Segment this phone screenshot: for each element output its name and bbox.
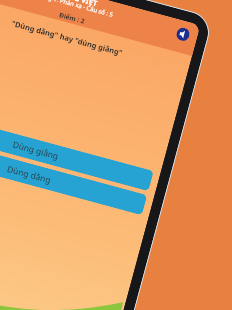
staticText: Vòng 1: Phản xạ - Câu số : 5 <box>37 0 114 19</box>
button[interactable]: Sound <box>175 26 191 42</box>
staticText: Dùng giằng <box>11 139 60 162</box>
staticText: "Dùng dằng" hay "dùng giằng" <box>10 18 124 58</box>
staticText: Dùng dằng <box>6 163 52 186</box>
staticText: TIẾNG VIỆT <box>56 0 99 8</box>
button[interactable]: Dùng dằng <box>0 133 147 215</box>
button[interactable]: Dùng giằng <box>0 109 154 191</box>
staticText: Điểm : 2 <box>58 10 86 26</box>
